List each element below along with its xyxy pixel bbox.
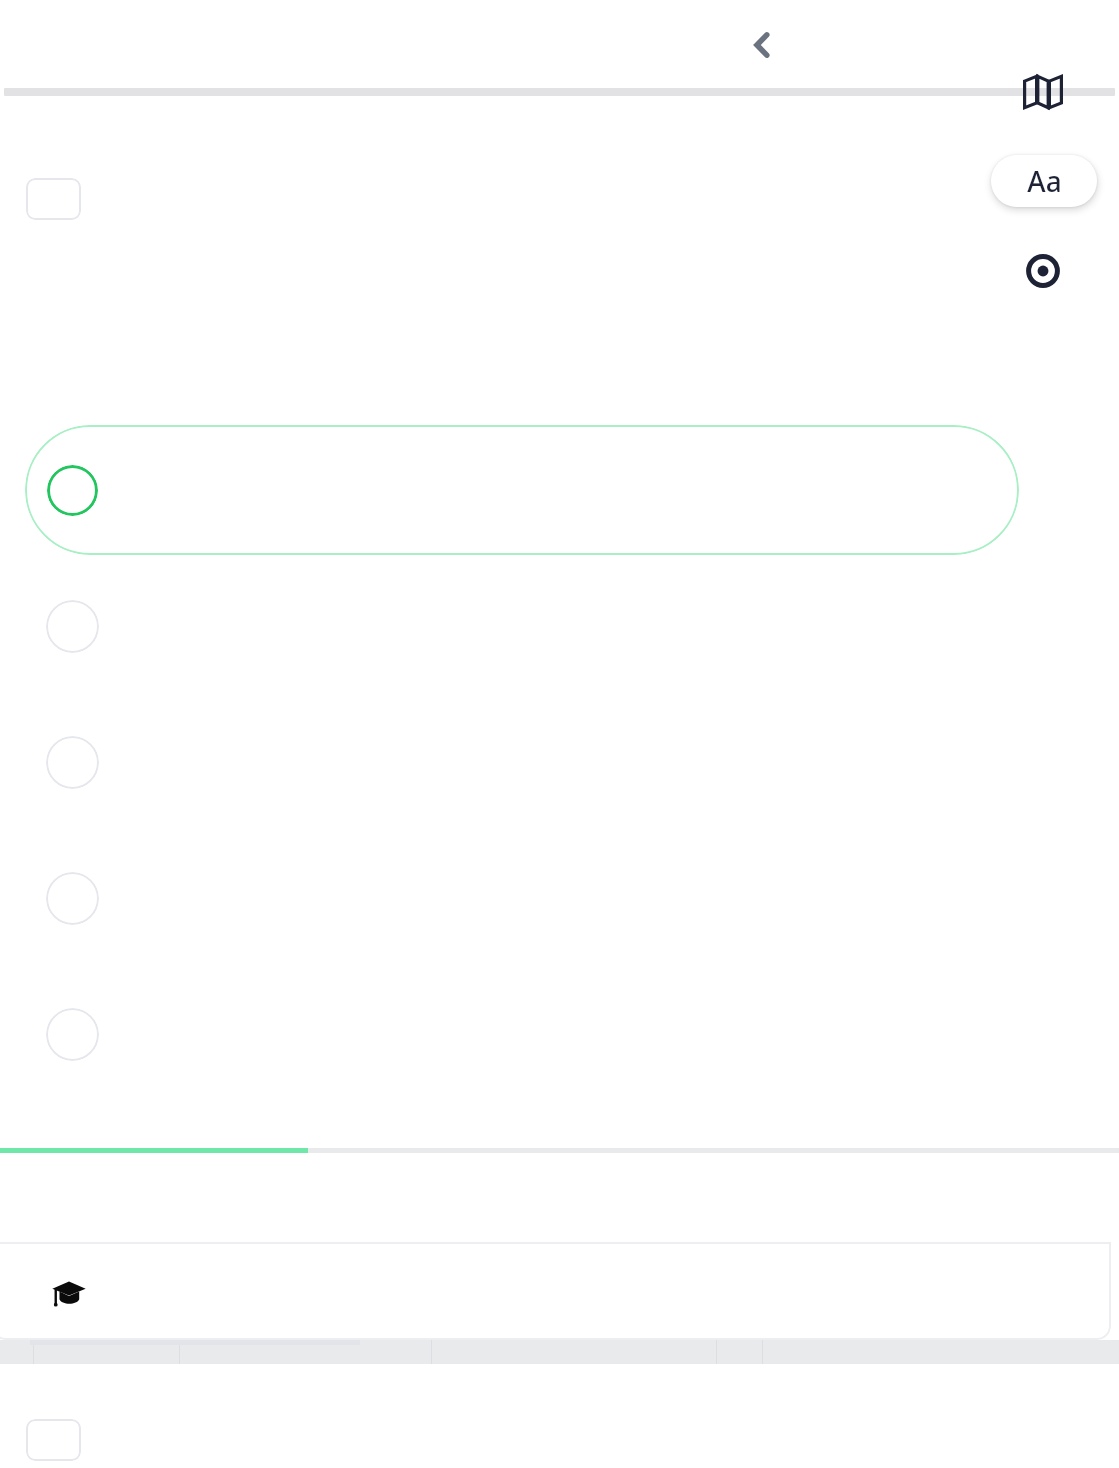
button[interactable]	[26, 1419, 81, 1461]
button[interactable]	[26, 178, 81, 220]
button[interactable]	[0, 1242, 1111, 1340]
staticText: Aa	[1027, 162, 1062, 200]
button[interactable]: Back	[735, 18, 789, 72]
button[interactable]: Location	[1016, 244, 1070, 298]
button[interactable]	[25, 425, 1019, 555]
button[interactable]: Map	[1015, 66, 1071, 118]
button[interactable]: Aa	[991, 155, 1097, 207]
